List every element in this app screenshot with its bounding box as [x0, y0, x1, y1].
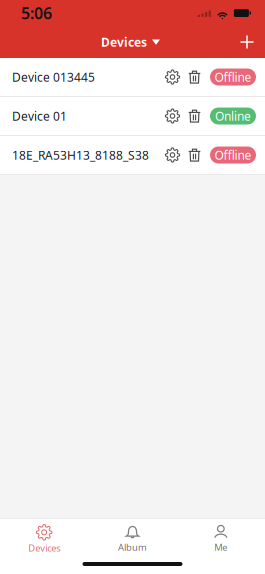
staticText: Offline — [214, 147, 251, 163]
button[interactable]: Offline — [210, 58, 256, 96]
staticText: Device 013445 — [12, 69, 95, 85]
button[interactable]: Me — [177, 519, 265, 555]
staticText: 18E_RA53H13_8188_S38 — [12, 147, 149, 163]
staticText: Device 01 — [12, 108, 67, 124]
staticText: Offline — [214, 69, 251, 85]
button[interactable]: Device settings — [161, 97, 184, 135]
staticText: Online — [215, 108, 251, 124]
button[interactable]: Devices — [95, 26, 166, 58]
button[interactable]: Online — [210, 97, 256, 135]
button[interactable]: Add device — [233, 26, 261, 58]
staticText: Me — [214, 541, 227, 553]
staticText: Devices — [101, 34, 147, 50]
staticText: Devices — [28, 542, 60, 554]
button[interactable]: Devices — [0, 519, 88, 555]
staticText: 5:06 — [21, 2, 52, 24]
button[interactable]: Offline — [210, 136, 256, 174]
button[interactable]: Device settings — [161, 136, 184, 174]
button[interactable]: Album — [88, 519, 177, 555]
button[interactable]: Delete device — [184, 97, 205, 135]
button[interactable]: Delete device — [184, 58, 205, 96]
button[interactable]: Device settings — [161, 58, 184, 96]
staticText: Album — [118, 541, 147, 553]
button[interactable]: Delete device — [184, 136, 205, 174]
